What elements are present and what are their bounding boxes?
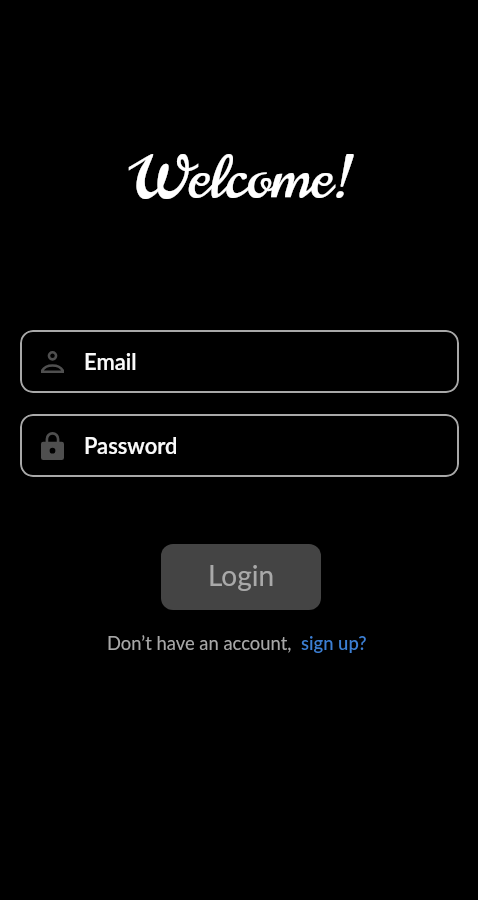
- staticText: Login: [208, 558, 275, 592]
- button[interactable]: Email: [20, 330, 459, 393]
- staticText: Email: [84, 348, 137, 374]
- staticText: Don’t have an account,: [107, 632, 292, 654]
- button[interactable]: Password: [20, 414, 459, 477]
- staticText: sign up?: [301, 632, 367, 654]
- button[interactable]: Login: [161, 544, 321, 610]
- other: Email: [41, 351, 64, 373]
- staticText: Welcome!: [131, 137, 350, 220]
- button[interactable]: sign up?: [301, 632, 367, 654]
- other: Password: [41, 432, 64, 460]
- staticText: Password: [84, 432, 178, 458]
